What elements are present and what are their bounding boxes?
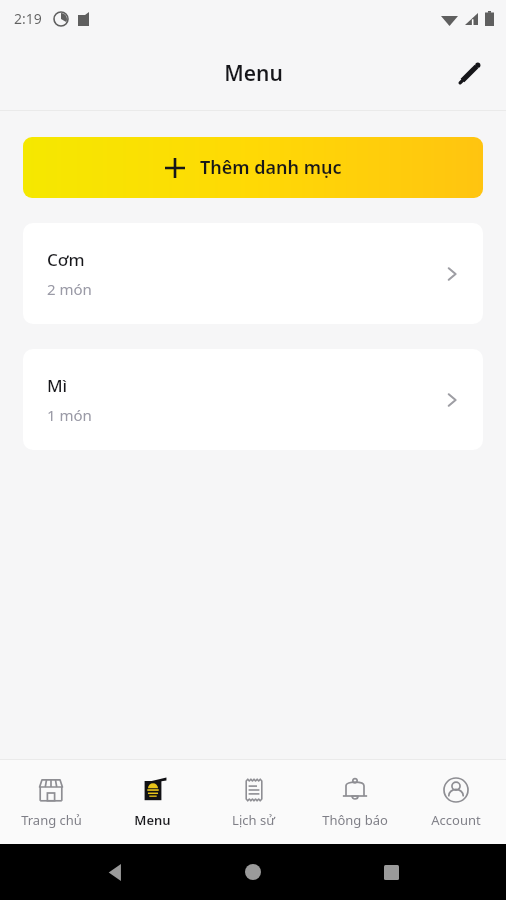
staticText: 2:19 [14,9,42,28]
staticText: Cơm [47,248,85,271]
staticText: Thông báo [322,811,388,829]
button[interactable]: Cơm [23,223,483,324]
button[interactable]: Mì [23,349,483,450]
button[interactable]: Recent apps [368,849,414,895]
staticText: Account [431,811,481,829]
button[interactable]: Trang chủ [0,760,102,844]
button[interactable]: Menu [102,760,203,844]
button[interactable]: Account [405,760,506,844]
staticText: Lịch sử [232,811,275,829]
button[interactable]: Back [92,849,138,895]
staticText: Menu [134,811,171,829]
button[interactable]: Edit [446,49,494,97]
button[interactable]: Thêm danh mục [23,137,483,198]
button[interactable]: Lịch sử [203,760,304,844]
staticText: Thêm danh mục [200,155,342,180]
staticText: 1 món [47,405,92,425]
button[interactable]: Home [230,849,276,895]
staticText: Trang chủ [21,811,82,829]
button[interactable]: Thông báo [304,760,405,844]
staticText: Mì [47,374,68,397]
staticText: 2 món [47,279,92,299]
staticText: Menu [224,59,283,88]
